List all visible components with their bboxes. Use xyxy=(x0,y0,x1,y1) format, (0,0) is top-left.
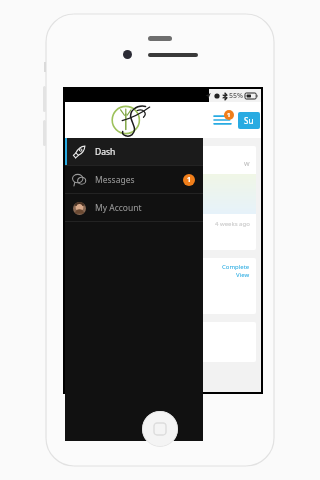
staticText: Su xyxy=(244,115,254,126)
staticText: Messages xyxy=(95,174,135,186)
staticText: Dash xyxy=(95,146,116,158)
staticText: 1 xyxy=(187,175,192,185)
staticText: 1 xyxy=(227,111,231,119)
button[interactable]: My Account xyxy=(65,194,203,222)
staticText: W xyxy=(244,160,250,168)
button[interactable]: Messages xyxy=(65,166,203,194)
button[interactable]: Dash xyxy=(65,138,203,166)
staticText: 4 weeks ago xyxy=(215,220,250,228)
button[interactable]: Home logo xyxy=(105,103,157,137)
staticText: My Account xyxy=(95,202,142,214)
staticText: Complete xyxy=(222,263,250,271)
staticText: 55% xyxy=(229,91,243,101)
button[interactable]: Menu xyxy=(209,109,235,131)
button[interactable]: Su xyxy=(238,112,260,129)
staticText: View xyxy=(236,271,250,279)
